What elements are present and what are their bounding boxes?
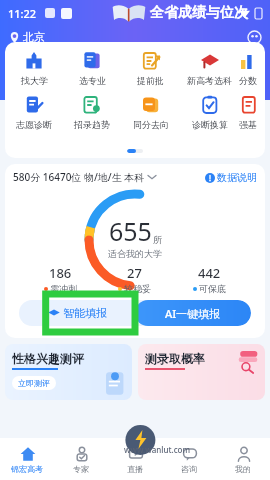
staticText: 655 <box>109 214 152 248</box>
button[interactable]: 专家 <box>54 438 108 480</box>
staticText: 全省成绩与位次 <box>150 4 248 22</box>
staticText: 27 <box>127 264 142 282</box>
staticText: 强基 <box>239 119 257 130</box>
staticText: 智能填报 <box>63 306 107 320</box>
button[interactable]: 同分去向 <box>121 92 180 132</box>
staticText: 咨询 <box>181 464 197 474</box>
staticText: 招录趋势 <box>74 119 110 130</box>
button[interactable]: Customer service <box>245 28 263 46</box>
button[interactable]: AI一键填报 <box>135 300 251 326</box>
button[interactable]: 提前批 <box>121 48 180 88</box>
staticText: 立即测评 <box>18 378 50 388</box>
staticText: www.wanlut.com <box>124 444 191 455</box>
staticText: 442 <box>198 264 221 282</box>
staticText: 580分 16470位 物/地/生 本科 <box>13 170 145 184</box>
staticText: 11:22 <box>8 6 37 21</box>
staticText: 直播 <box>127 464 143 474</box>
staticText: 需冲刺 <box>50 283 77 294</box>
staticText: 186 <box>49 264 72 282</box>
staticText: 较稳妥 <box>124 283 151 294</box>
staticText: 北京 <box>23 30 45 44</box>
staticText: 锦宏高考 <box>11 464 43 474</box>
button[interactable]: 找大学 <box>5 48 63 88</box>
staticText: 适合我的大学 <box>108 248 162 259</box>
staticText: 专家 <box>73 464 89 474</box>
button[interactable]: 锦宏高考 <box>0 438 54 480</box>
button[interactable]: 强基 <box>239 92 265 132</box>
button[interactable]: 招录趋势 <box>63 92 121 132</box>
button[interactable]: 580分 16470位 物/地/生 本科 <box>13 170 156 184</box>
staticText: 数据说明 <box>217 171 257 184</box>
button[interactable]: 志愿诊断 <box>5 92 63 132</box>
button[interactable]: 直播 <box>108 438 162 480</box>
staticText: 分数 <box>239 75 257 86</box>
staticText: 性格兴趣测评 <box>12 351 84 366</box>
staticText: 测录取概率 <box>145 351 205 366</box>
staticText: AI一键填报 <box>165 306 221 321</box>
staticText: 选专业 <box>79 75 106 86</box>
button[interactable]: 分数 <box>239 48 265 88</box>
button[interactable]: 诊断换算 <box>180 92 239 132</box>
staticText: 可保底 <box>199 283 226 294</box>
button[interactable]: 选专业 <box>63 48 121 88</box>
staticText: 找大学 <box>21 75 48 86</box>
button[interactable]: 测录取概率 <box>138 344 265 400</box>
button[interactable]: 北京 <box>7 28 47 46</box>
staticText: 诊断换算 <box>192 119 228 130</box>
button[interactable]: 数据说明 <box>205 171 257 184</box>
staticText: 新高考选科 <box>187 75 232 86</box>
staticText: 提前批 <box>137 75 164 86</box>
button[interactable]: 新高考选科 <box>180 48 239 88</box>
staticText: 所 <box>153 234 162 245</box>
button[interactable]: 智能填报 <box>19 300 135 326</box>
staticText: 同分去向 <box>133 119 169 130</box>
staticText: 志愿诊断 <box>16 119 52 130</box>
staticText: 我的 <box>235 464 251 474</box>
button[interactable]: 我的 <box>216 438 270 480</box>
button[interactable]: 性格兴趣测评 <box>5 344 132 400</box>
button[interactable]: 咨询 <box>162 438 216 480</box>
